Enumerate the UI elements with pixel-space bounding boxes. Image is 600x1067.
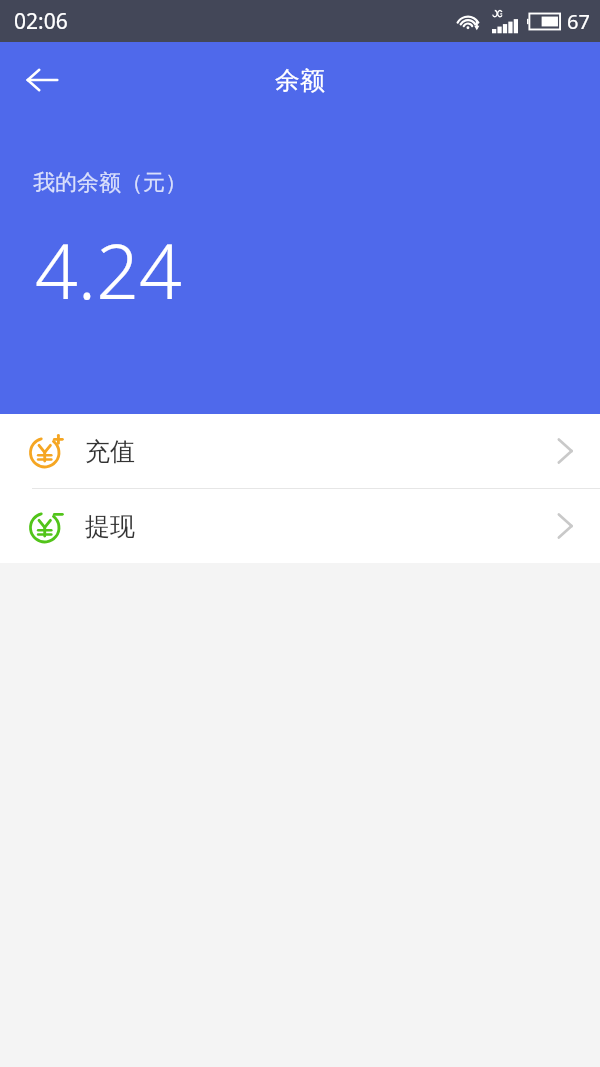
- staticText: 02:06: [14, 7, 68, 36]
- staticText: 充值: [85, 436, 135, 467]
- button[interactable]: 提现: [0, 489, 600, 563]
- staticText: 67: [567, 8, 590, 35]
- staticText: 4.24: [35, 219, 182, 321]
- staticText: 提现: [85, 511, 135, 542]
- staticText: 余额: [275, 65, 325, 96]
- staticText: 我的余额（元）: [33, 169, 187, 197]
- button[interactable]: 充值: [0, 414, 600, 488]
- button[interactable]: Back: [14, 52, 70, 108]
